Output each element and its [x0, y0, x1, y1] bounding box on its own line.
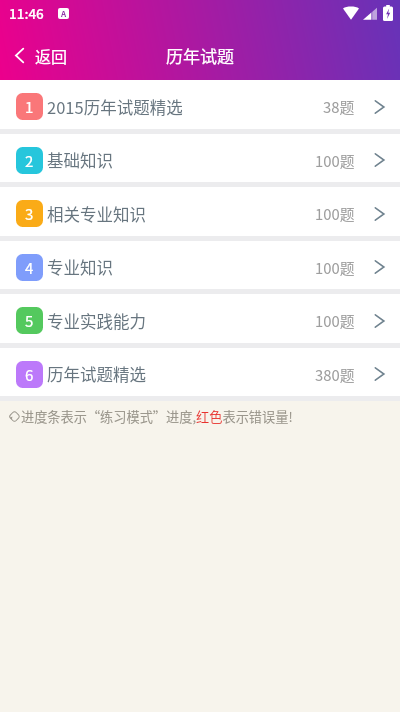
staticText: 进度条表示“练习模式”进度,红色表示错误量! [21, 407, 293, 426]
staticText: 2015历年试题精选 [47, 95, 183, 119]
button[interactable]: 6 [0, 348, 400, 396]
button[interactable]: 1 [0, 80, 400, 129]
staticText: 5 [25, 310, 34, 332]
staticText: 38题 [323, 96, 355, 117]
staticText: 100题 [315, 150, 355, 171]
staticText: 4 [25, 257, 34, 279]
staticText: 11:46 [9, 3, 44, 23]
staticText: 100题 [315, 310, 355, 331]
staticText: 相关专业知识 [47, 202, 146, 226]
staticText: 380题 [315, 364, 355, 385]
button[interactable]: 返回 [0, 31, 80, 80]
staticText: 6 [25, 364, 34, 386]
staticText: 历年试题 [166, 43, 234, 68]
staticText: 历年试题精选 [47, 362, 146, 386]
staticText: A [61, 8, 67, 19]
staticText: 3 [25, 203, 34, 225]
staticText: 基础知识 [47, 148, 113, 172]
button[interactable]: 5 [0, 294, 400, 343]
staticText: 专业实践能力 [47, 309, 146, 333]
staticText: 返回 [35, 44, 68, 67]
staticText: 1 [25, 96, 34, 118]
staticText: 专业知识 [47, 255, 113, 279]
button[interactable]: 3 [0, 187, 400, 236]
staticText: 2 [25, 150, 34, 172]
staticText: 100题 [315, 257, 355, 278]
button[interactable]: 2 [0, 134, 400, 182]
button[interactable]: 4 [0, 241, 400, 289]
staticText: 100题 [315, 203, 355, 224]
